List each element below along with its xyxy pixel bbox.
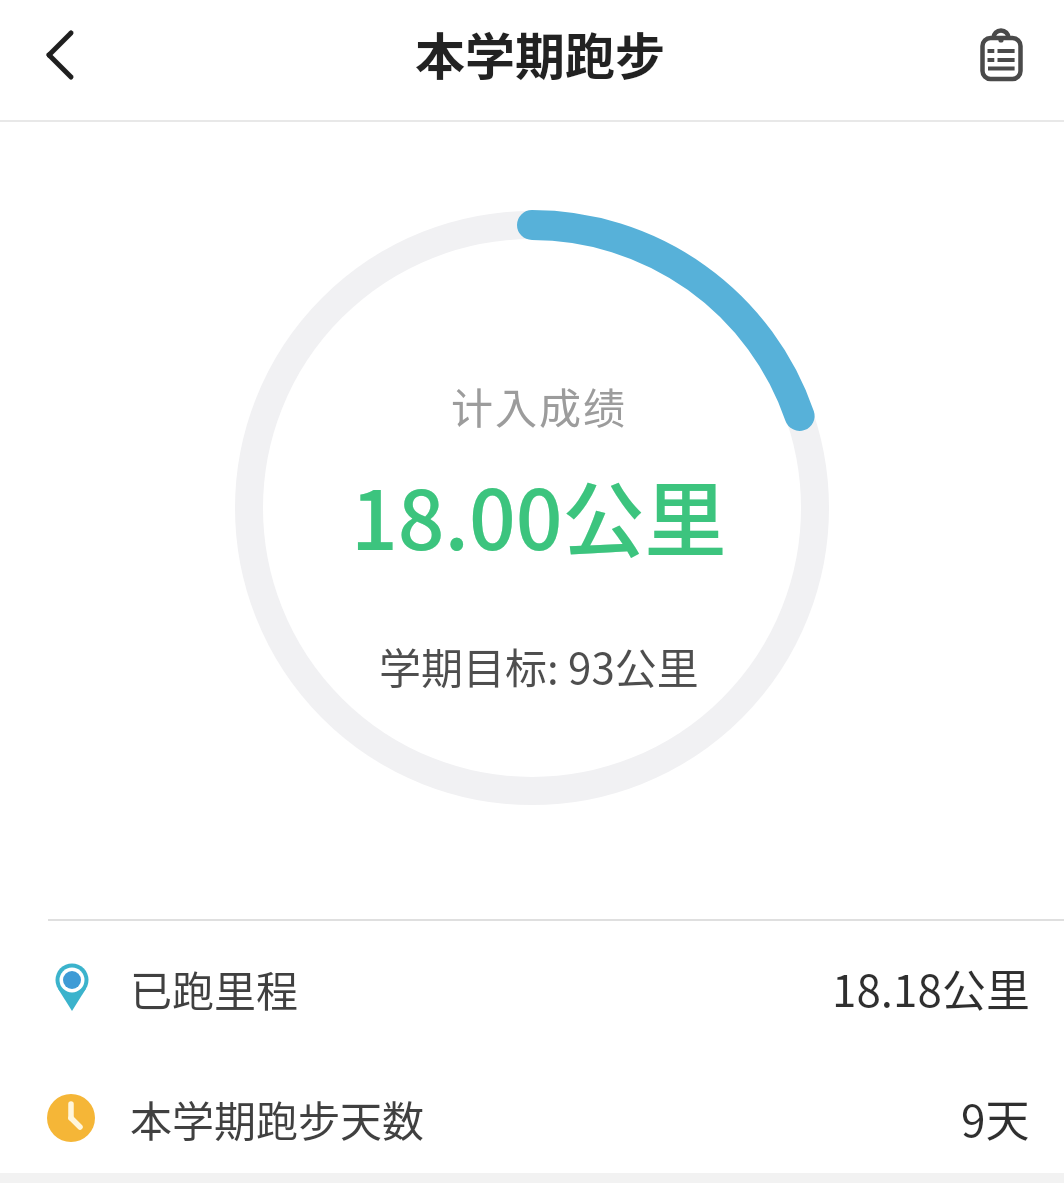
button[interactable]: 本学期跑步天数	[0, 1071, 1064, 1165]
staticText: 18.18公里	[832, 956, 1030, 1020]
staticText: 本学期跑步	[415, 17, 665, 89]
button[interactable]	[962, 15, 1042, 95]
staticText: 学期目标: 93公里	[379, 635, 699, 695]
staticText: 计入成绩	[451, 375, 628, 435]
staticText: 18.00公里	[351, 455, 727, 567]
button[interactable]: 已跑里程	[0, 941, 1064, 1035]
button[interactable]	[20, 15, 100, 95]
staticText: 9天	[961, 1086, 1030, 1150]
staticText: 已跑里程	[130, 958, 299, 1019]
staticText: 本学期跑步天数	[130, 1088, 425, 1149]
